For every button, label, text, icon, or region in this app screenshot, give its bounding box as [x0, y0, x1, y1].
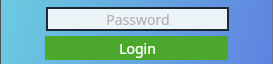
button[interactable]: Password: [46, 7, 229, 31]
staticText: Login: [119, 39, 156, 58]
staticText: Password: [106, 10, 170, 29]
button[interactable]: Login: [45, 36, 228, 60]
